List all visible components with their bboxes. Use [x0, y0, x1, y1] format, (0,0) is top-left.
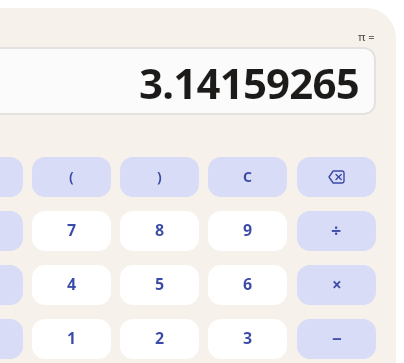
staticText: (: [69, 167, 74, 186]
staticText: C: [243, 167, 252, 186]
staticText: 2: [155, 327, 165, 349]
staticText: 8: [155, 219, 165, 241]
staticText: 3.14159265: [139, 54, 360, 111]
staticText: −: [332, 327, 342, 350]
staticText: 6: [243, 273, 253, 295]
staticText: π =: [358, 29, 375, 44]
staticText: ): [157, 167, 162, 186]
staticText: 9: [243, 219, 253, 241]
staticText: ×: [332, 273, 342, 296]
staticText: 3: [243, 327, 253, 349]
staticText: 7: [67, 219, 77, 241]
staticText: 5: [155, 273, 165, 295]
staticText: ÷: [331, 218, 342, 243]
staticText: 4: [67, 273, 77, 295]
staticText: 1: [67, 327, 77, 349]
